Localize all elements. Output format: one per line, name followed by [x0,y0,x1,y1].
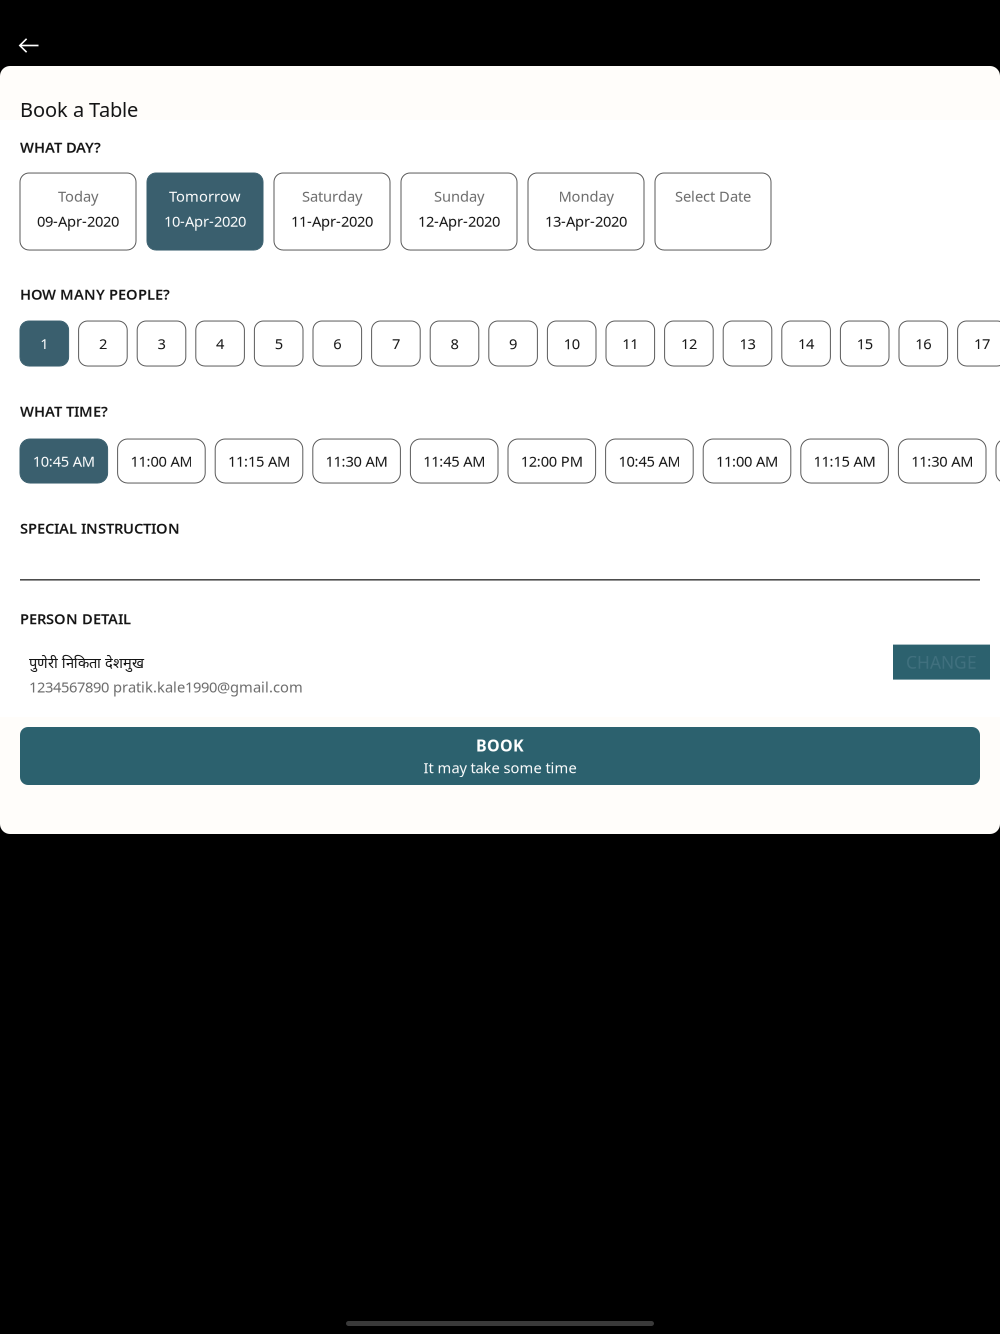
staticText: 10 [564,334,580,353]
staticText: 11:30 AM [911,451,973,471]
button[interactable]: 11:00 AM [118,439,205,483]
staticText: Sunday [434,186,484,206]
staticText: 12 [681,334,697,353]
staticText: 11:00 AM [130,451,192,471]
staticText: 2 [99,334,107,353]
staticText: 11-Apr-2020 [291,211,373,231]
staticText: 16 [915,334,931,353]
button[interactable]: 12:00 PM [508,439,596,483]
staticText: 13 [739,334,755,353]
button[interactable]: Select Date [655,173,771,250]
button[interactable]: 11:45 AM [996,439,1000,483]
staticText: Tomorrow [169,186,241,206]
button[interactable]: 14 [782,321,830,366]
staticText: Book a Table [20,96,138,123]
button[interactable]: 15 [840,321,889,366]
button[interactable]: Today [20,173,136,250]
staticText: 17 [974,334,990,353]
button[interactable]: 11:30 AM [313,439,400,483]
staticText: 13-Apr-2020 [545,211,627,231]
staticText: 11 [622,334,638,353]
button[interactable]: 8 [430,321,479,366]
button[interactable]: 10:45 AM [606,439,693,483]
staticText: 1 [40,334,48,353]
staticText: 7 [392,334,400,353]
staticText: पुणेरी निकिता देशमुख [29,653,144,672]
button[interactable]: 10 [547,321,596,366]
button[interactable]: 16 [899,321,948,366]
staticText: PERSON DETAIL [20,609,131,628]
button[interactable]: Tomorrow [147,173,263,250]
staticText: 8 [450,334,458,353]
button[interactable]: 13 [723,321,772,366]
staticText: 15 [857,334,873,353]
staticText: It may take some time [423,758,576,777]
staticText: 1234567890 pratik.kale1990@gmail.com [29,677,303,697]
staticText: 4 [216,334,224,353]
button[interactable]: 11:00 AM [703,439,791,483]
button[interactable]: 12 [665,321,713,366]
staticText: WHAT TIME? [20,401,108,421]
staticText: BOOK [476,735,524,756]
button[interactable]: 11:45 AM [410,439,498,483]
staticText: 9 [509,334,517,353]
staticText: 09-Apr-2020 [37,211,119,231]
button[interactable]: Monday [528,173,644,250]
staticText: 11:15 AM [228,451,290,471]
button[interactable]: 11:15 AM [215,439,303,483]
staticText: 12-Apr-2020 [418,211,500,231]
button[interactable]: 9 [489,321,537,366]
staticText: 12:00 PM [521,451,583,471]
staticText: Today [58,186,98,206]
staticText: 10:45 AM [33,451,95,471]
button[interactable]: 1 [20,321,69,366]
button[interactable]: 11:30 AM [898,439,986,483]
button[interactable]: CHANGE [893,645,990,680]
button[interactable]: 10:45 AM [20,439,108,483]
staticText: Saturday [302,186,362,206]
button[interactable]: 2 [79,321,127,366]
staticText: 10:45 AM [618,451,680,471]
button[interactable]: Sunday [401,173,517,250]
staticText: 11:45 AM [423,451,485,471]
button[interactable]: 17 [958,321,1000,366]
staticText: CHANGE [906,651,977,674]
button[interactable]: 7 [372,321,420,366]
staticText: SPECIAL INSTRUCTION [20,518,180,538]
staticText: 10-Apr-2020 [164,211,246,231]
staticText: HOW MANY PEOPLE? [20,284,170,304]
button[interactable]: 11:15 AM [801,439,888,483]
staticText: 14 [798,334,814,353]
staticText: Select Date [675,186,751,206]
button[interactable]: 11 [606,321,655,366]
staticText: WHAT DAY? [20,137,101,157]
button[interactable]: Saturday [274,173,390,250]
button[interactable]: 3 [137,321,186,366]
button[interactable]: 5 [254,321,303,366]
button[interactable]: 4 [196,321,244,366]
button[interactable]: BOOK [20,727,980,785]
staticText: 6 [333,334,341,353]
button[interactable]: 6 [313,321,362,366]
staticText: Monday [558,186,613,206]
staticText: 11:00 AM [716,451,778,471]
staticText: 11:30 AM [326,451,388,471]
staticText: 11:15 AM [814,451,876,471]
button[interactable]: Back [0,0,58,66]
staticText: 5 [275,334,283,353]
staticText: 3 [157,334,165,353]
